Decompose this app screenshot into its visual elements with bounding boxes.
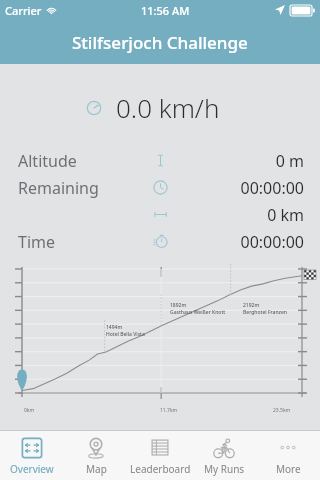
staticText: More (276, 462, 301, 476)
staticText: Stilfserjoch Challenge (72, 31, 248, 54)
staticText: 0km (24, 407, 35, 414)
staticText: 00:00:00 (240, 231, 304, 253)
staticText: 00:00:00 (240, 177, 304, 199)
button[interactable]: Map (64, 431, 128, 480)
button[interactable]: Leaderboard (128, 431, 192, 480)
staticText: 0.0 km/h (116, 90, 220, 125)
staticText: Leaderboard (130, 462, 191, 476)
staticText: 23.5km (273, 407, 291, 414)
staticText: Hotel Bella Vista (106, 331, 145, 338)
button[interactable]: Time (0, 228, 320, 255)
button[interactable]: More (256, 431, 320, 480)
staticText: 11:56 AM (141, 3, 190, 18)
staticText: 1892m (170, 302, 187, 309)
staticText: Overview (10, 462, 54, 476)
staticText: 0 km (267, 204, 304, 226)
staticText: Berghotel Franzen (243, 309, 287, 316)
staticText: 1494m (106, 324, 123, 331)
button[interactable]: Remaining (0, 174, 320, 201)
staticText: Carrier (5, 3, 42, 18)
staticText: Remaining (18, 177, 99, 199)
staticText: Map (86, 462, 107, 476)
staticText: Gasthaus Weißer Knott (170, 309, 226, 316)
staticText: 11.7km (160, 407, 178, 414)
button[interactable]: My Runs (192, 431, 256, 480)
button[interactable]: 0 km (0, 201, 320, 228)
staticText: Altitude (18, 150, 77, 172)
staticText: 2192m (243, 302, 260, 309)
staticText: 0 m (275, 150, 304, 172)
button[interactable]: Altitude (0, 147, 320, 174)
staticText: My Runs (204, 462, 245, 476)
button[interactable]: Overview (0, 431, 64, 480)
staticText: Time (18, 231, 56, 253)
